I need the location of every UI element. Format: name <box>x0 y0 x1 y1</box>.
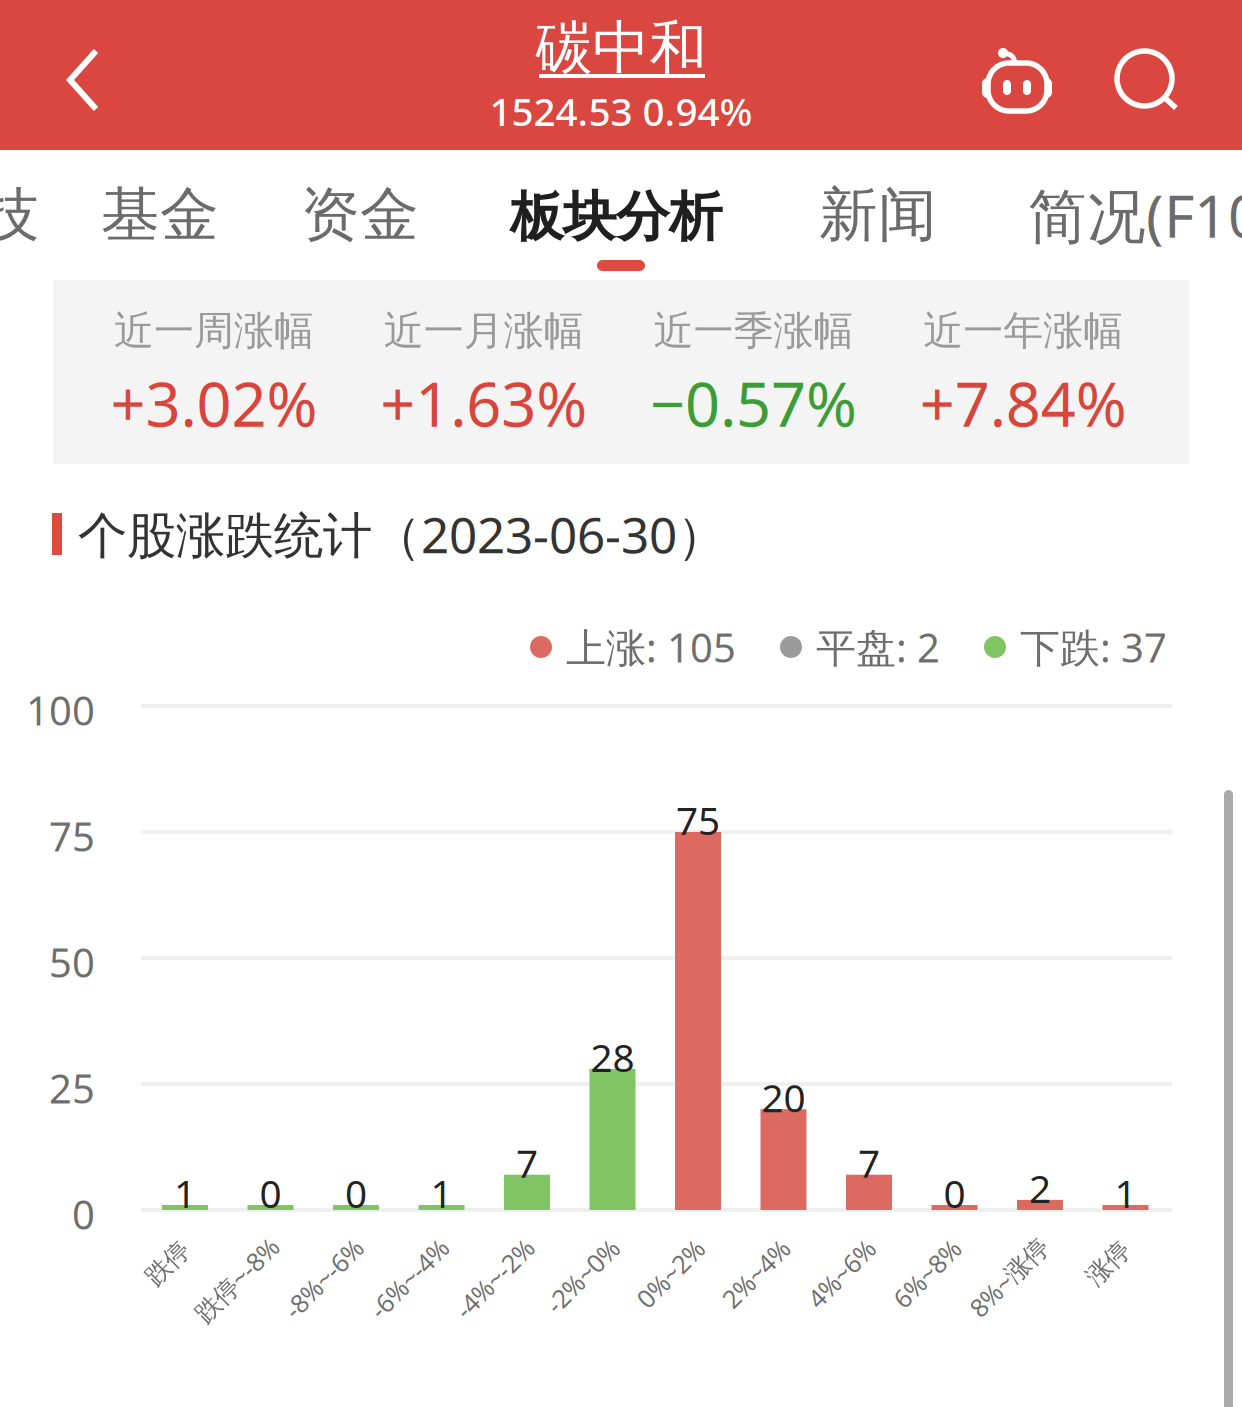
staticText: 25 <box>49 1061 95 1114</box>
staticText: 6%~8% <box>885 1257 969 1290</box>
staticText: 75 <box>676 794 720 846</box>
staticText: 0 <box>943 1167 965 1219</box>
button[interactable]: 基金 <box>60 150 260 280</box>
staticText: 新闻 <box>819 179 937 251</box>
staticText: -8%~-6% <box>274 1261 374 1295</box>
staticText: +7.84% <box>920 362 1127 444</box>
staticText: 个股涨跌统计（2023-06-30） <box>78 501 726 567</box>
staticText: 0 <box>345 1167 367 1219</box>
staticText: 上涨: 105 <box>566 620 736 673</box>
staticText: 100 <box>26 683 95 736</box>
staticText: 跌停~-8% <box>183 1263 290 1296</box>
button[interactable]: 技 <box>0 150 60 280</box>
staticText: 技 <box>0 179 39 251</box>
staticText: 平盘: 2 <box>816 620 940 673</box>
staticText: -4%~-2% <box>445 1261 545 1295</box>
staticText: 跌停 <box>143 1248 193 1279</box>
staticText: 28 <box>590 1031 634 1082</box>
staticText: 7 <box>516 1137 538 1188</box>
button[interactable]: Assistant <box>958 0 1076 150</box>
staticText: 1 <box>174 1167 196 1219</box>
staticText: 0 <box>259 1167 281 1219</box>
staticText: 近一月涨幅 <box>384 306 584 355</box>
staticText: 8%~涨停 <box>959 1260 1058 1294</box>
button[interactable]: Search <box>1088 0 1206 150</box>
staticText: -2%~0% <box>537 1259 629 1293</box>
button[interactable]: 板块分析 <box>460 150 772 280</box>
button[interactable]: 简况(F10) <box>984 150 1242 280</box>
staticText: 下跌: 37 <box>1020 620 1167 673</box>
button[interactable]: 新闻 <box>772 150 984 280</box>
staticText: 近一周涨幅 <box>114 306 314 355</box>
staticText: 2%~4% <box>714 1257 798 1290</box>
staticText: −0.57% <box>650 362 857 444</box>
staticText: 1524.53 0.94% <box>489 85 752 137</box>
staticText: +1.63% <box>380 362 587 444</box>
staticText: 50 <box>49 935 95 988</box>
staticText: -6%~-4% <box>359 1261 459 1295</box>
button[interactable]: Back <box>0 0 130 150</box>
staticText: 近一季涨幅 <box>653 306 853 355</box>
button[interactable]: 资金 <box>260 150 460 280</box>
staticText: 近一年涨幅 <box>923 306 1123 355</box>
staticText: 基金 <box>101 179 219 251</box>
staticText: 0%~2% <box>628 1257 712 1290</box>
staticText: 1 <box>1114 1167 1136 1219</box>
staticText: 1 <box>430 1167 452 1219</box>
staticText: 7 <box>858 1137 880 1188</box>
staticText: 简况(F10) <box>1028 176 1242 254</box>
staticText: 涨停 <box>1083 1248 1133 1279</box>
staticText: 板块分析 <box>510 184 722 250</box>
staticText: 碳中和 <box>535 13 706 83</box>
staticText: 资金 <box>301 179 419 251</box>
staticText: 20 <box>761 1071 805 1123</box>
staticText: +3.02% <box>110 362 317 444</box>
staticText: 4%~6% <box>799 1257 883 1290</box>
staticText: 0 <box>72 1187 95 1240</box>
staticText: 75 <box>49 809 95 862</box>
staticText: 2 <box>1029 1162 1051 1213</box>
